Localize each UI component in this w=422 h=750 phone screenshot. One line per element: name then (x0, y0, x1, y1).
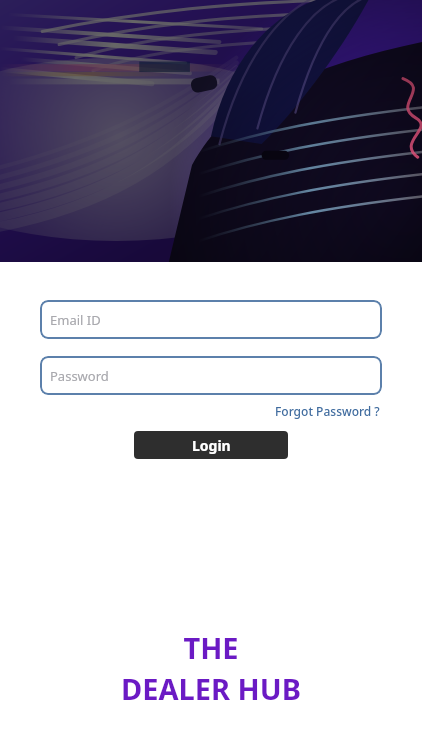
staticText: Password (50, 367, 109, 385)
staticText: Forgot Password ? (275, 403, 380, 419)
staticText: DEALER HUB (121, 669, 301, 708)
staticText: Email ID (50, 311, 101, 329)
staticText: Login (192, 436, 231, 455)
button[interactable]: Email ID (40, 300, 382, 339)
button[interactable]: Forgot Password ? (273, 402, 382, 420)
button[interactable]: Login (134, 431, 288, 459)
button[interactable]: Password (40, 356, 382, 395)
staticText: THE (183, 628, 239, 667)
